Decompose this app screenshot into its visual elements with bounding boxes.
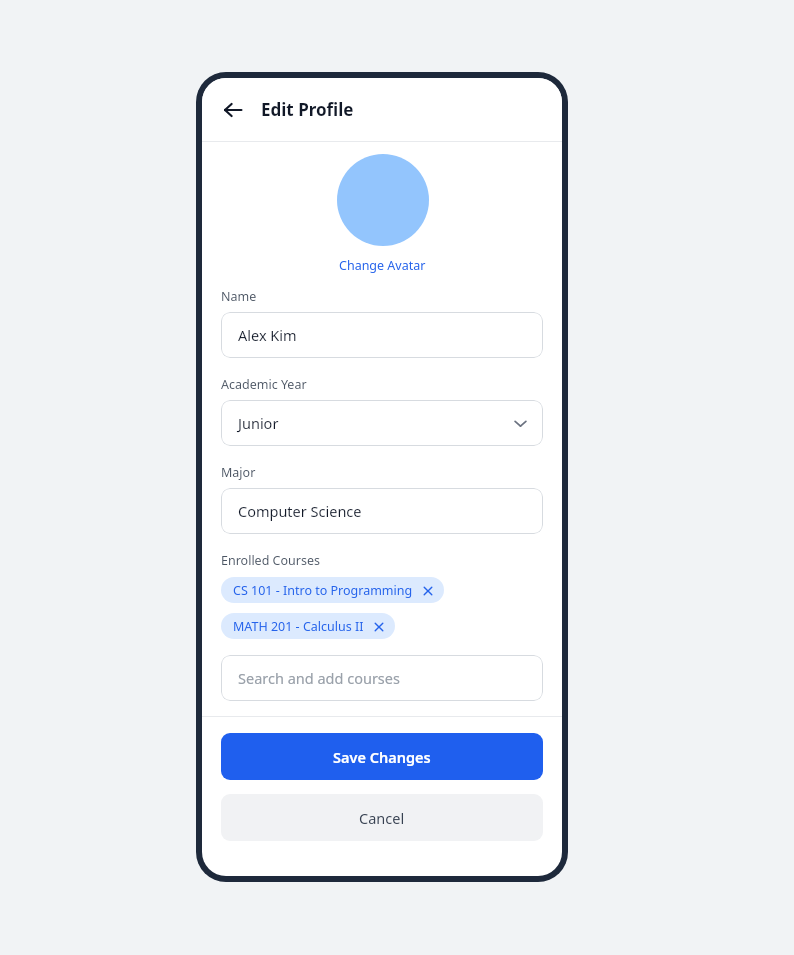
button[interactable]: Computer Science — [221, 488, 543, 534]
staticText: Junior — [238, 413, 279, 433]
staticText: Save Changes — [333, 747, 431, 767]
button[interactable]: MATH 201 - Calculus II — [221, 613, 395, 639]
staticText: Name — [221, 288, 257, 305]
staticText: Cancel — [359, 808, 405, 828]
other: Remove CS 101 - Intro to Programming — [421, 584, 434, 597]
staticText: Enrolled Courses — [221, 552, 320, 569]
button[interactable]: Cancel — [221, 794, 543, 841]
staticText: Edit Profile — [261, 98, 354, 121]
button[interactable]: Change Avatar — [335, 255, 430, 276]
staticText: Change Avatar — [339, 257, 426, 274]
other: Remove MATH 201 - Calculus II — [372, 620, 385, 633]
staticText: Academic Year — [221, 376, 307, 393]
staticText: Computer Science — [238, 501, 362, 521]
button[interactable]: CS 101 - Intro to Programming — [221, 577, 444, 603]
button[interactable]: Back — [215, 92, 251, 128]
button[interactable]: Alex Kim — [221, 312, 543, 358]
button[interactable]: Avatar — [337, 154, 429, 246]
staticText: Search and add courses — [238, 668, 400, 688]
staticText: Major — [221, 464, 256, 481]
button[interactable]: Search and add courses — [221, 655, 543, 701]
button[interactable]: Junior — [221, 400, 543, 446]
button[interactable]: Save Changes — [221, 733, 543, 780]
staticText: MATH 201 - Calculus II — [233, 618, 364, 635]
staticText: CS 101 - Intro to Programming — [233, 582, 413, 599]
staticText: Alex Kim — [238, 325, 297, 345]
